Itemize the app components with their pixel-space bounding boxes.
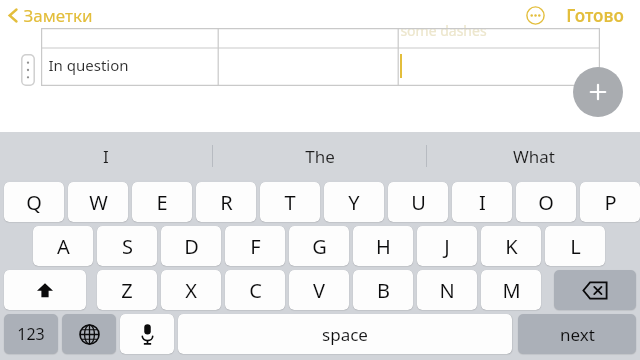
button[interactable]: R	[196, 182, 256, 222]
button[interactable]: Q	[4, 182, 64, 222]
button[interactable]: J	[417, 226, 477, 266]
staticText: X	[185, 277, 197, 304]
staticText: Q	[26, 189, 42, 216]
staticText: Z	[121, 277, 133, 304]
staticText: C	[249, 277, 262, 304]
staticText: A	[57, 233, 70, 260]
button[interactable]: T	[260, 182, 320, 222]
staticText: space	[322, 323, 368, 346]
button[interactable]: D	[161, 226, 221, 266]
staticText: N	[439, 277, 455, 304]
staticText: O	[538, 189, 554, 216]
button[interactable]: The	[213, 132, 426, 180]
staticText: F	[250, 233, 261, 260]
button[interactable]: H	[353, 226, 413, 266]
staticText: K	[505, 233, 518, 260]
staticText: M	[502, 277, 521, 304]
button[interactable]: Z	[97, 270, 157, 310]
button[interactable]: Заметки	[0, 1, 103, 30]
button[interactable]: G	[289, 226, 349, 266]
button[interactable]: W	[68, 182, 128, 222]
button[interactable]: N	[417, 270, 477, 310]
staticText: What	[513, 145, 555, 168]
button[interactable]: Backspace	[554, 270, 636, 310]
staticText: P	[604, 189, 617, 216]
staticText: some dashes	[400, 21, 487, 40]
button[interactable]: F	[225, 226, 285, 266]
button[interactable]: L	[545, 226, 605, 266]
staticText: 123	[17, 323, 45, 345]
staticText: T	[284, 189, 296, 216]
button[interactable]: Shift	[4, 270, 86, 310]
button[interactable]: 123	[4, 314, 58, 354]
staticText: V	[313, 277, 325, 304]
staticText: S	[122, 233, 133, 260]
button[interactable]: Row handle	[21, 54, 35, 86]
staticText: E	[156, 189, 168, 216]
button[interactable]: B	[353, 270, 413, 310]
staticText: The	[305, 145, 335, 168]
staticText: Заметки	[23, 4, 93, 27]
staticText: Y	[348, 189, 360, 216]
staticText: J	[444, 233, 450, 260]
staticText: W	[89, 189, 108, 216]
button[interactable]: Switch keyboard	[62, 314, 116, 354]
button[interactable]: O	[516, 182, 576, 222]
staticText: G	[312, 233, 327, 260]
staticText: In question	[48, 55, 129, 75]
button[interactable]: A	[33, 226, 93, 266]
staticText: U	[411, 189, 426, 216]
staticText: I	[479, 189, 486, 216]
button[interactable]: What	[427, 132, 640, 180]
button[interactable]: M	[481, 270, 541, 310]
button[interactable]: U	[388, 182, 448, 222]
button[interactable]: More options	[521, 1, 550, 30]
button[interactable]: space	[178, 314, 512, 354]
staticText: H	[376, 233, 391, 260]
button[interactable]: K	[481, 226, 541, 266]
button[interactable]: Add	[573, 67, 623, 117]
button[interactable]: E	[132, 182, 192, 222]
button[interactable]: V	[289, 270, 349, 310]
button[interactable]: Dictate	[120, 314, 174, 354]
staticText: L	[570, 233, 581, 260]
button[interactable]: C	[225, 270, 285, 310]
staticText: R	[220, 189, 233, 216]
button[interactable]: I	[452, 182, 512, 222]
staticText: D	[184, 233, 199, 260]
staticText: I	[103, 145, 109, 168]
button[interactable]: Y	[324, 182, 384, 222]
button[interactable]: X	[161, 270, 221, 310]
staticText: B	[377, 277, 390, 304]
button[interactable]: I	[0, 132, 212, 180]
staticText: next	[560, 323, 595, 346]
button[interactable]: P	[580, 182, 640, 222]
button[interactable]: next	[518, 314, 636, 354]
button[interactable]: Готово	[560, 1, 630, 30]
staticText: Готово	[566, 4, 624, 27]
button[interactable]: S	[97, 226, 157, 266]
